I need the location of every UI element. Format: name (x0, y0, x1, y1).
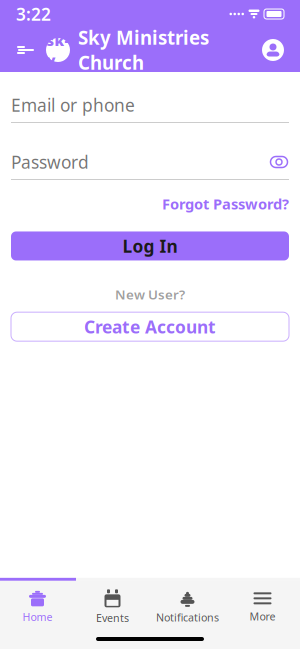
button[interactable]: Create Account (11, 312, 289, 341)
staticText: Forgot Password? (162, 194, 289, 213)
staticText: Password (11, 150, 89, 173)
staticText: Events (96, 611, 129, 625)
button[interactable]: Notifications (150, 581, 225, 628)
button[interactable]: More (225, 582, 300, 627)
staticText: Email or phone (11, 93, 135, 116)
staticText: Log In (122, 234, 177, 257)
button[interactable]: Show password (269, 154, 289, 170)
button[interactable]: Log In (11, 231, 289, 260)
button[interactable]: Forgot Password? (162, 190, 289, 217)
staticText: Notifications (156, 610, 219, 624)
staticText: Create Account (84, 315, 216, 338)
button[interactable]: Profile (252, 31, 294, 69)
staticText: More (249, 609, 275, 623)
button[interactable]: Events (75, 581, 150, 629)
staticText: 3:22 (16, 2, 51, 25)
staticText: Sky Ministries Church (78, 25, 209, 75)
button[interactable]: Back (6, 33, 46, 67)
staticText: New User? (115, 285, 185, 303)
staticText: sky (46, 30, 69, 69)
button[interactable]: Home (0, 582, 75, 628)
staticText: Home (22, 610, 52, 624)
